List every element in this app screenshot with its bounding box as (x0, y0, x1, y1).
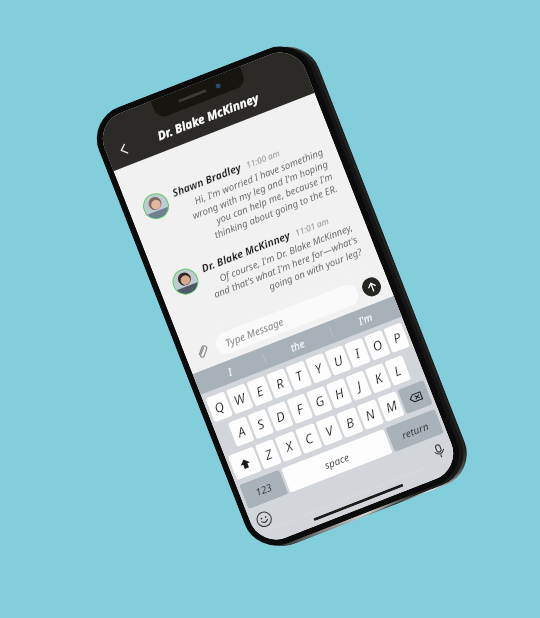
button[interactable]: T (285, 360, 312, 391)
button[interactable]: Shift (228, 446, 262, 480)
button[interactable]: Y (305, 353, 332, 384)
button[interactable]: Emoji (254, 509, 274, 530)
staticText: A (235, 422, 249, 441)
staticText: W (231, 388, 249, 409)
button[interactable]: K (365, 363, 392, 394)
button[interactable]: P (383, 322, 410, 353)
button[interactable]: E (246, 375, 273, 407)
button[interactable]: O (364, 330, 391, 361)
button[interactable]: G (306, 385, 333, 417)
button[interactable]: B (336, 407, 364, 438)
button[interactable]: H (325, 378, 353, 409)
staticText: Y (312, 359, 325, 378)
staticText: H (332, 383, 346, 403)
staticText: return (400, 419, 431, 442)
button[interactable]: Attach (191, 341, 214, 364)
button[interactable]: C (295, 423, 323, 454)
staticText: space (322, 450, 352, 472)
button[interactable]: Back (109, 135, 137, 163)
button[interactable]: Shawn Bradley (125, 123, 353, 270)
button[interactable]: U (324, 345, 352, 376)
button[interactable]: the (261, 322, 335, 368)
staticText: B (343, 413, 357, 432)
staticText: 123 (253, 480, 274, 499)
button[interactable]: M (377, 391, 405, 422)
staticText: P (390, 328, 404, 347)
button[interactable]: space (281, 429, 393, 493)
button[interactable]: N (356, 399, 384, 430)
button[interactable]: Backspace (397, 380, 433, 414)
button[interactable]: Q (205, 391, 233, 423)
staticText: I (226, 364, 235, 379)
staticText: K (372, 368, 386, 388)
staticText: the (288, 336, 307, 354)
staticText: Type Message (223, 314, 286, 350)
staticText: C (302, 429, 316, 448)
button[interactable]: return (385, 409, 444, 452)
staticText: Of course, I'm Dr. Blake McKinney, and t… (205, 221, 364, 313)
staticText: Dr. Blake McKinney (199, 228, 292, 275)
staticText: F (293, 399, 306, 418)
staticText: O (370, 335, 386, 355)
button[interactable]: V (315, 415, 343, 446)
staticText: 11:01 am (293, 215, 331, 239)
button[interactable]: D (267, 401, 294, 432)
button[interactable]: I (193, 348, 268, 395)
staticText: 11:00 am (244, 147, 282, 171)
button[interactable]: F (286, 393, 313, 424)
staticText: N (362, 404, 378, 425)
staticText: I'm (356, 310, 374, 328)
staticText: V (322, 421, 336, 440)
staticText: E (253, 381, 266, 401)
button[interactable]: Dr. Blake McKinney (154, 198, 378, 333)
staticText: R (273, 373, 287, 393)
staticText: G (312, 391, 327, 411)
button[interactable]: S (247, 408, 274, 439)
staticText: J (354, 376, 364, 395)
button[interactable]: X (274, 431, 302, 462)
staticText: Shawn Bradley (170, 160, 243, 200)
button[interactable]: 123 (239, 469, 288, 509)
staticText: Q (211, 397, 227, 417)
button[interactable]: I (344, 337, 371, 368)
button[interactable]: I'm (328, 296, 402, 342)
button[interactable]: Dictate (429, 441, 450, 461)
staticText: T (292, 366, 305, 385)
staticText: Hi, I'm worried I have something wrong w… (176, 145, 339, 250)
staticText: M (383, 396, 400, 417)
button[interactable]: A (228, 416, 255, 447)
button[interactable]: W (226, 383, 254, 415)
staticText: I (352, 344, 363, 362)
button[interactable]: Z (255, 439, 282, 470)
button[interactable]: R (266, 368, 293, 399)
staticText: Z (262, 445, 275, 464)
staticText: X (282, 437, 295, 456)
staticText: D (273, 406, 288, 426)
staticText: L (391, 361, 404, 380)
button[interactable]: J (345, 370, 372, 401)
button[interactable]: Type Message (212, 281, 362, 357)
staticText: S (254, 414, 267, 434)
staticText: U (331, 351, 345, 371)
staticText: Dr. Blake McKinney (155, 89, 261, 143)
button[interactable]: Send (359, 275, 384, 299)
button[interactable]: L (384, 355, 411, 386)
